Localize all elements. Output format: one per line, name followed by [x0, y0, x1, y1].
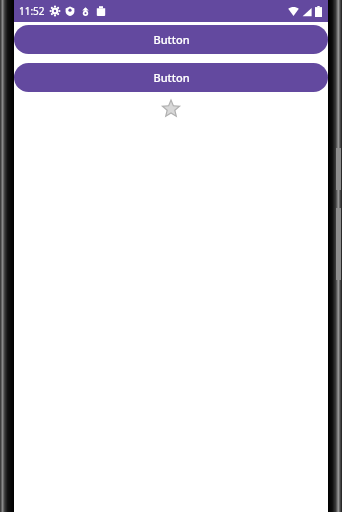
other: Rating star [160, 98, 182, 120]
button[interactable]: Button [14, 63, 328, 92]
staticText: Button [153, 70, 190, 85]
staticText: Button [153, 32, 190, 47]
button[interactable]: Button [14, 25, 328, 54]
staticText: 11:52 [19, 4, 45, 18]
